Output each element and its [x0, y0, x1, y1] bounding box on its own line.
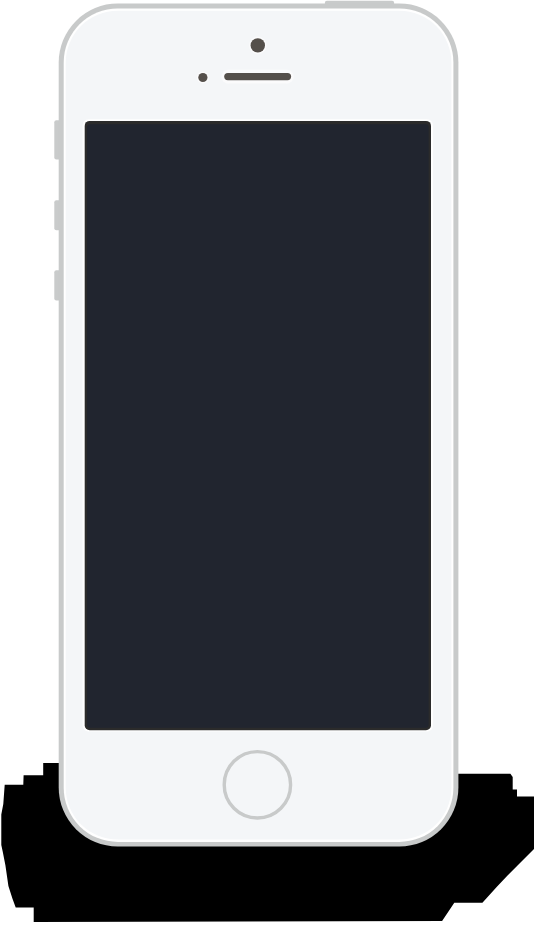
- button[interactable]: Power button: [325, 1, 394, 13]
- button[interactable]: Volume up: [54, 200, 64, 230]
- button[interactable]: Volume down: [54, 270, 64, 300]
- button[interactable]: Home button: [222, 750, 292, 820]
- button[interactable]: Ring silent switch: [54, 120, 64, 159]
